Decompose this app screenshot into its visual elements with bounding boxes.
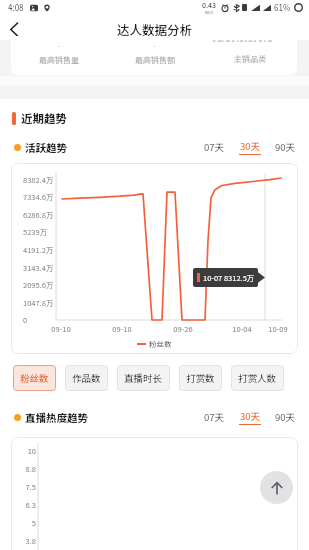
- button[interactable]: 07天: [203, 410, 226, 424]
- staticText: 8.8: [25, 463, 36, 474]
- button[interactable]: 90天: [274, 410, 297, 424]
- button[interactable]: 打赏数: [179, 365, 222, 391]
- button[interactable]: 30天: [238, 139, 262, 155]
- staticText: 09-18: [112, 323, 132, 334]
- staticText: 10: [27, 445, 36, 456]
- button[interactable]: 粉丝数: [13, 365, 56, 391]
- staticText: KB/S: [205, 10, 214, 15]
- button[interactable]: 30天: [238, 409, 262, 425]
- staticText: 5: [31, 517, 36, 528]
- staticText: 30天: [240, 409, 261, 423]
- staticText: 5239万: [23, 226, 48, 237]
- staticText: 0: [23, 314, 28, 325]
- button[interactable]: 返回: [0, 18, 28, 40]
- staticText: -: [153, 41, 156, 51]
- staticText: 最高销售额: [135, 54, 175, 66]
- staticText: 7.5: [25, 481, 36, 492]
- staticText: 90天: [275, 410, 296, 424]
- staticText: 09-26: [173, 323, 193, 334]
- staticText: 10-09: [268, 323, 288, 334]
- staticText: 10-07 8312.5万: [203, 272, 255, 283]
- staticText: 粉丝数: [20, 371, 49, 385]
- staticText: 2095.6万: [23, 279, 54, 290]
- staticText: 活跃趋势: [25, 140, 67, 155]
- staticText: 主销品类: [234, 53, 266, 65]
- staticText: 粉丝数: [149, 338, 172, 349]
- staticText: 3.8: [25, 535, 36, 546]
- staticText: 30天: [240, 139, 261, 153]
- staticText: 0.43: [202, 0, 217, 10]
- button[interactable]: 打赏人数: [231, 365, 284, 391]
- button[interactable]: 作品数: [65, 365, 108, 391]
- staticText: 6.3: [25, 499, 36, 510]
- staticText: 1047.8万: [23, 297, 54, 308]
- button[interactable]: 直播时长: [117, 365, 170, 391]
- staticText: 打赏数: [186, 371, 215, 385]
- staticText: 10-04: [232, 323, 252, 334]
- staticText: 4:08: [8, 2, 24, 14]
- staticText: 打赏人数: [238, 371, 277, 385]
- staticText: 90天: [275, 140, 296, 154]
- staticText: 达人数据分析: [117, 20, 193, 38]
- staticText: 8382.4万: [23, 174, 54, 185]
- staticText: 07天: [204, 140, 225, 154]
- staticText: 6286.8万: [23, 209, 54, 220]
- staticText: 3143.4万: [23, 262, 54, 273]
- button[interactable]: 回到顶部: [260, 471, 293, 504]
- button[interactable]: 90天: [274, 140, 297, 154]
- staticText: -: [58, 41, 61, 51]
- staticText: 07天: [204, 410, 225, 424]
- staticText: 4191.2万: [23, 244, 54, 255]
- staticText: 近期趋势: [21, 110, 67, 127]
- staticText: 直播热度趋势: [25, 410, 88, 425]
- staticText: 7334.6万: [23, 191, 54, 202]
- staticText: 作品数: [72, 371, 101, 385]
- staticText: 最高销售量: [39, 54, 79, 66]
- button[interactable]: 07天: [203, 140, 226, 154]
- staticText: 直播时长: [124, 371, 163, 385]
- staticText: 61%: [274, 2, 291, 14]
- staticText: 09-10: [51, 323, 71, 334]
